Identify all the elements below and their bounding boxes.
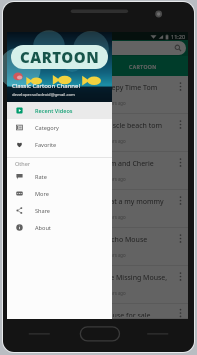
- staticText: 2 years ago: [102, 252, 126, 258]
- button[interactable]: More options: [176, 271, 185, 282]
- staticText: About: [35, 224, 51, 232]
- staticText: Share: [35, 207, 51, 215]
- button[interactable]: More options: [176, 119, 185, 130]
- staticText: Rate: [35, 173, 47, 181]
- staticText: 11:20: [171, 33, 186, 40]
- staticText: Favorite: [35, 141, 57, 149]
- staticText: Classic Cartoon Channel: [12, 82, 80, 90]
- button[interactable]: RECENT: [7, 56, 97, 76]
- staticText: 2 years ago: [102, 138, 126, 144]
- staticText: CARTOON: [20, 47, 100, 67]
- staticText: Category: [35, 124, 59, 132]
- button[interactable]: 7:12: [7, 76, 188, 114]
- button[interactable]: About: [7, 219, 112, 236]
- button[interactable]: 7:12: [7, 228, 188, 266]
- button[interactable]: More options: [176, 81, 185, 92]
- button[interactable]: More options: [176, 309, 185, 317]
- button[interactable]: 7:12: [7, 190, 188, 228]
- staticText: Muscle beach tom: [102, 121, 162, 131]
- staticText: 2 years ago: [102, 290, 126, 296]
- staticText: Tom and Cherie: [102, 159, 154, 169]
- button[interactable]: Rate: [7, 168, 112, 185]
- button[interactable]: Share: [7, 202, 112, 219]
- button[interactable]: 7:12: [7, 266, 188, 304]
- button[interactable]: More: [7, 185, 112, 202]
- staticText: Nacho Mouse: [102, 235, 148, 245]
- button[interactable]: 7:12: [7, 114, 188, 152]
- button[interactable]: Recent Videos: [7, 102, 112, 119]
- staticText: 2 years ago: [102, 100, 126, 106]
- staticText: 2 years ago: [102, 176, 126, 182]
- staticText: 2 years ago: [102, 214, 126, 220]
- staticText: That a my mommy: [102, 197, 164, 207]
- button[interactable]: CARTOON: [97, 56, 188, 76]
- button[interactable]: Category: [7, 119, 112, 136]
- staticText: More: [35, 190, 49, 198]
- staticText: CARTOON: [129, 63, 157, 70]
- staticText: Sleepy Time Tom: [102, 83, 158, 93]
- staticText: Other: [15, 160, 31, 167]
- button[interactable]: More options: [176, 157, 185, 168]
- button[interactable]: Favorite: [7, 136, 112, 153]
- staticText: RECENT: [41, 63, 63, 70]
- staticText: Recent Videos: [35, 107, 73, 115]
- other: Search: [174, 44, 182, 52]
- staticText: developer.solodroid@gmail.com: [12, 92, 75, 98]
- button[interactable]: 7:12: [7, 304, 188, 319]
- staticText: The Missing Mouse,: [102, 273, 168, 283]
- staticText: Mouse for sale: [102, 311, 151, 317]
- button[interactable]: Search: [9, 41, 186, 55]
- button[interactable]: More options: [176, 195, 185, 206]
- button[interactable]: More options: [176, 233, 185, 244]
- button[interactable]: 7:12: [7, 152, 188, 190]
